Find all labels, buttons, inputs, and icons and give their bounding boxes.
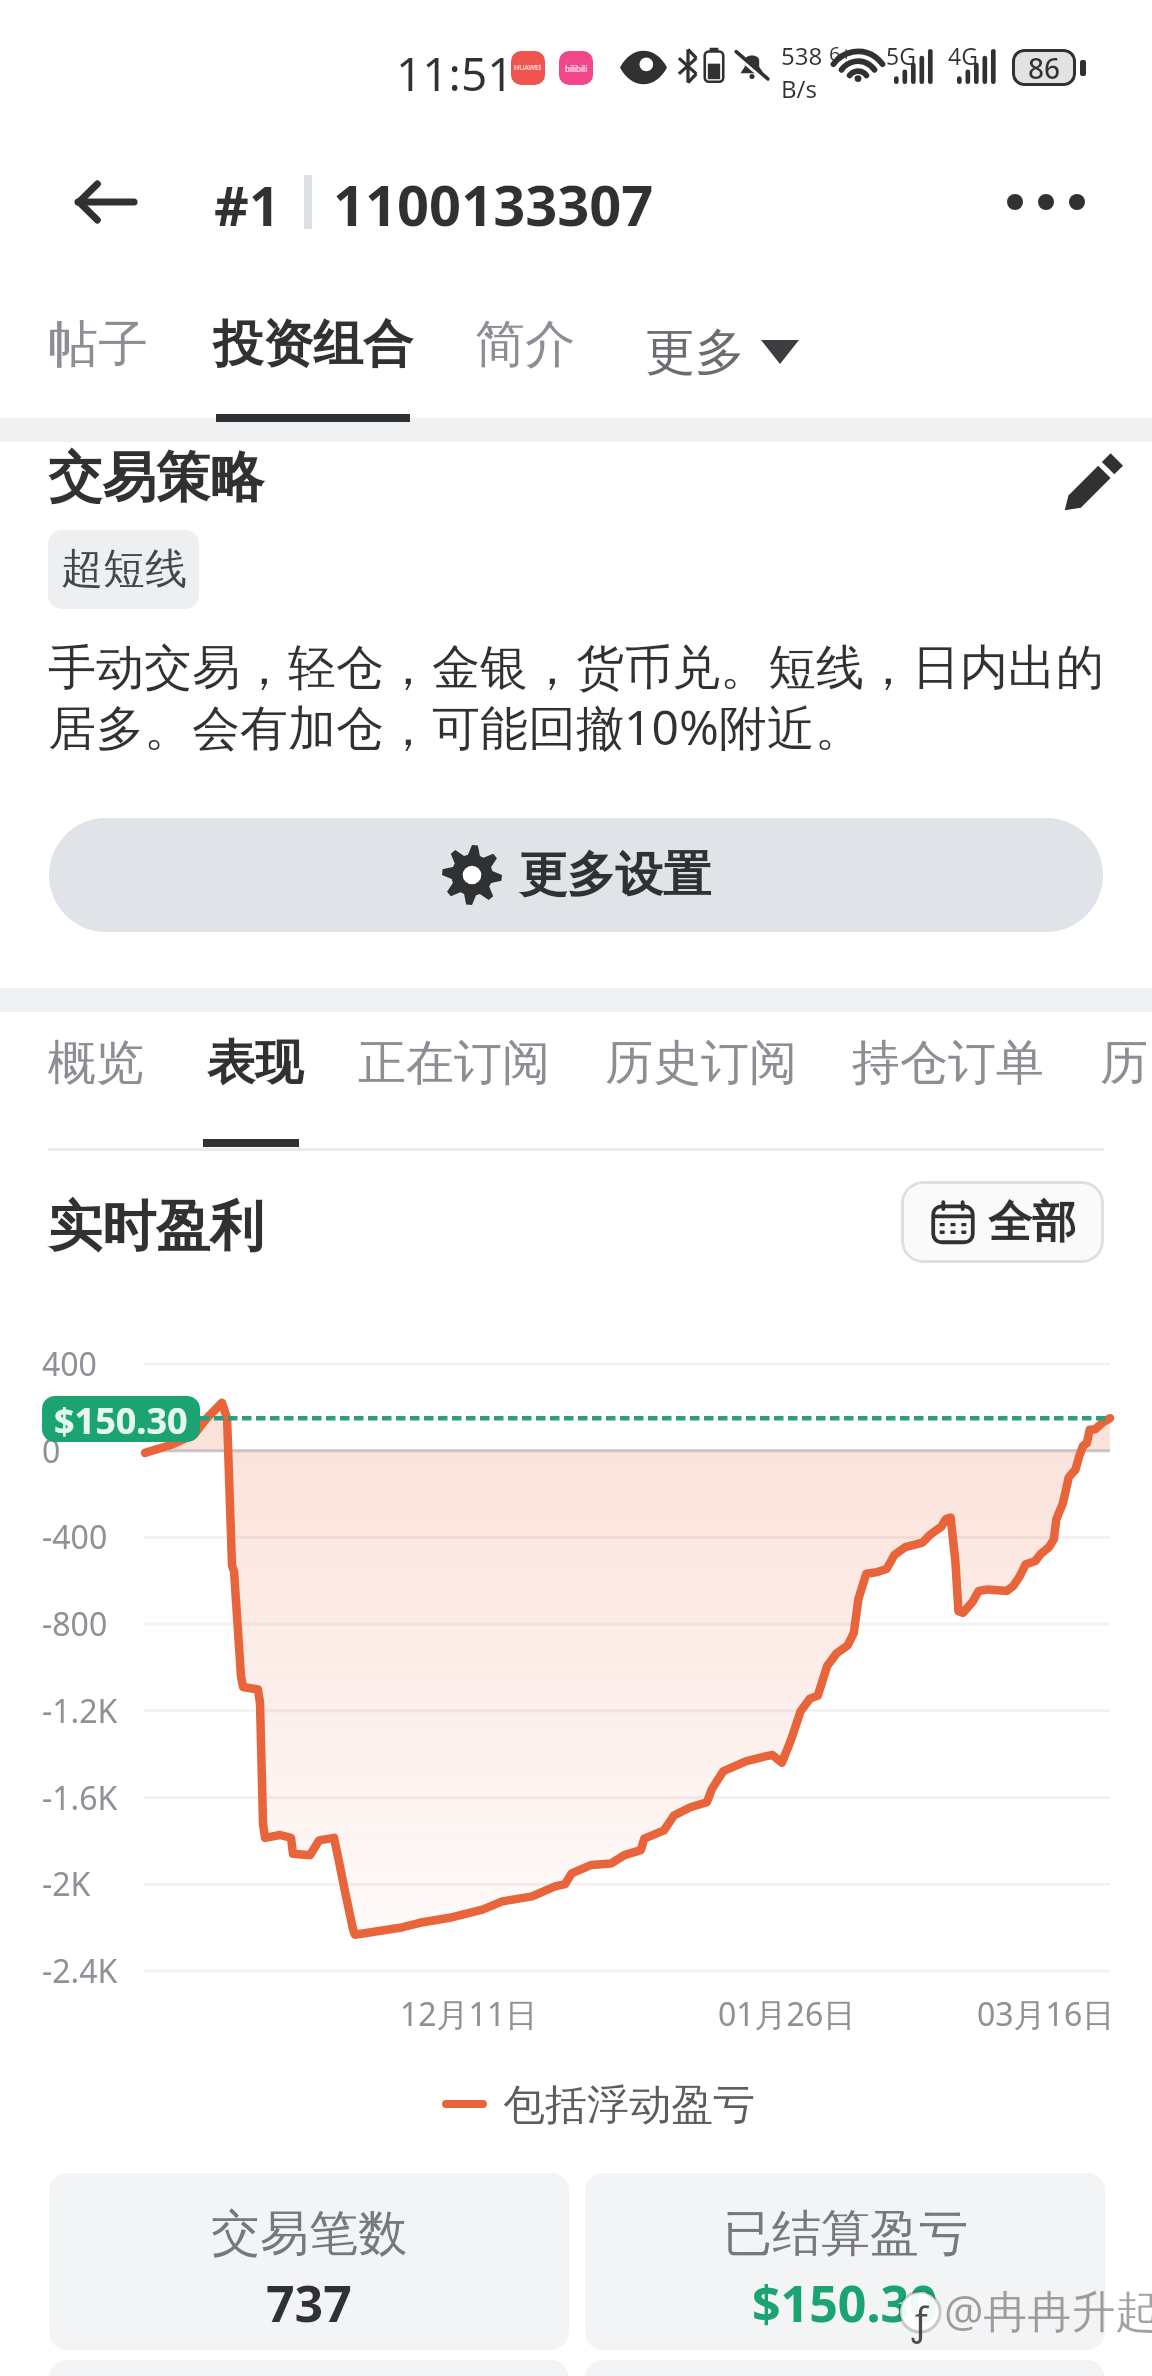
staticText: -400 — [42, 1515, 108, 1559]
staticText: 538 — [781, 39, 823, 72]
staticText: -2K — [42, 1862, 91, 1906]
staticText: 0 — [42, 1429, 61, 1473]
staticText: 12月11日 — [400, 1992, 538, 2036]
staticText: 更多 — [645, 321, 745, 384]
staticText: 737 — [266, 2269, 352, 2337]
staticText: #1 — [214, 168, 280, 242]
staticText: 持仓订单 — [852, 1033, 1044, 1093]
staticText: 超短线 — [61, 543, 187, 596]
button[interactable]: 超短线 — [48, 530, 199, 609]
staticText: -800 — [42, 1602, 108, 1646]
staticText: 全部 — [988, 1195, 1076, 1250]
staticText: 01月26日 — [718, 1992, 856, 2036]
staticText: 03月16日 — [977, 1992, 1115, 2036]
staticText: 简介 — [475, 313, 575, 376]
staticText: 6+ — [829, 40, 852, 67]
staticText: 400 — [42, 1342, 97, 1386]
staticText: 1100133307 — [333, 166, 654, 242]
button[interactable]: 历 — [1100, 1012, 1152, 1152]
staticText: 交易笔数 — [211, 2203, 407, 2265]
staticText: -2.4K — [42, 1949, 118, 1993]
staticText: 手动交易，轻仓，金银，货币兑。短线，日内出的居多。会有加仓，可能回撤10%附近。 — [48, 638, 1104, 759]
staticText: 投资组合 — [213, 313, 413, 376]
staticText: 包括浮动盈亏 — [503, 2079, 755, 2132]
staticText: B/s — [781, 72, 818, 105]
staticText: -1.6K — [42, 1776, 118, 1820]
staticText: 实时盈利 — [48, 1193, 264, 1261]
staticText: -1.2K — [42, 1689, 118, 1733]
button[interactable]: 表现 — [208, 1012, 302, 1152]
button[interactable]: 交易笔数 — [49, 2173, 569, 2350]
staticText: $150.30 — [54, 1396, 188, 1442]
button[interactable]: Back — [61, 157, 151, 247]
button[interactable]: 更多设置 — [49, 818, 1103, 932]
staticText: 表现 — [207, 1033, 303, 1093]
staticText: 交易策略 — [48, 444, 264, 512]
staticText: @冉冉升起 — [944, 2280, 1152, 2340]
staticText: 历史订阅 — [605, 1033, 797, 1093]
staticText: 帖子 — [48, 313, 148, 376]
button[interactable]: 已结算盈亏 — [585, 2173, 1105, 2350]
button[interactable]: Edit — [1055, 446, 1129, 520]
staticText: ƒ — [912, 2294, 928, 2346]
staticText: $150.30 — [752, 2269, 938, 2337]
staticText: 4G — [948, 40, 978, 71]
staticText: 历 — [1100, 1033, 1148, 1093]
staticText: bilibili — [565, 63, 588, 74]
staticText: 已结算盈亏 — [723, 2203, 968, 2265]
button[interactable]: 概览 — [48, 1012, 146, 1152]
staticText: 更多设置 — [519, 845, 711, 905]
button[interactable]: 简介 — [476, 290, 574, 422]
staticText: HUAWEI — [514, 63, 542, 73]
button[interactable]: 更多 — [645, 310, 799, 394]
staticText: 5G — [886, 40, 916, 71]
button[interactable]: 持仓订单 — [853, 1012, 1042, 1152]
staticText: 86 — [1028, 49, 1061, 86]
staticText: 11:51 — [396, 42, 514, 105]
button[interactable]: 历史订阅 — [606, 1012, 795, 1152]
button[interactable]: 帖子 — [48, 290, 150, 422]
staticText: 正在订阅 — [358, 1033, 550, 1093]
button[interactable]: More options — [984, 157, 1108, 247]
button[interactable]: 投资组合 — [216, 290, 410, 422]
button[interactable]: 正在订阅 — [360, 1012, 548, 1152]
button[interactable]: 全部 — [901, 1181, 1104, 1263]
staticText: 概览 — [48, 1033, 144, 1093]
